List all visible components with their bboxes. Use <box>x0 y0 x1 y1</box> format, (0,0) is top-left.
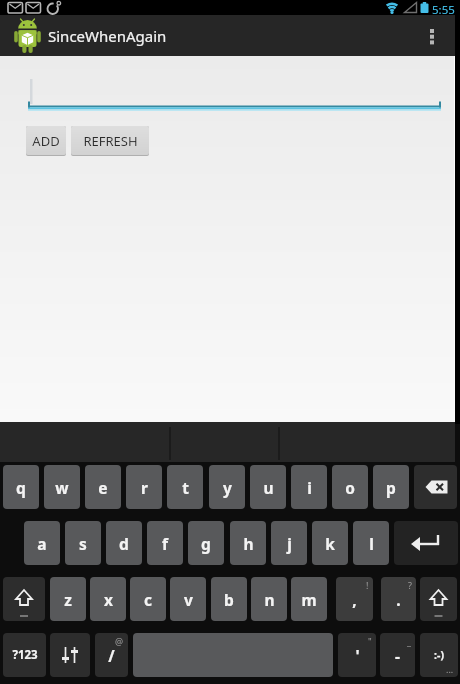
button[interactable]: c <box>130 577 166 621</box>
button[interactable]: b <box>211 577 247 621</box>
staticText: _ <box>407 635 411 647</box>
staticText: ?123 <box>12 647 38 663</box>
button[interactable]: v <box>170 577 206 621</box>
staticText: - <box>395 645 400 666</box>
staticText: e <box>98 477 108 498</box>
staticText: ' <box>355 645 360 666</box>
button[interactable]: o <box>332 465 368 509</box>
button[interactable] <box>418 15 446 56</box>
button[interactable] <box>414 465 457 509</box>
button[interactable]: g <box>188 521 224 565</box>
staticText: x <box>104 589 113 610</box>
staticText: o <box>345 477 355 498</box>
staticText: ! <box>366 579 369 591</box>
staticText: r <box>141 477 148 498</box>
staticText: g <box>201 533 211 554</box>
button[interactable]: x <box>90 577 126 621</box>
staticText: i <box>307 477 312 498</box>
staticText: f <box>162 533 168 554</box>
staticText: m <box>301 589 317 610</box>
staticText: @ <box>115 635 124 647</box>
button[interactable]: f <box>147 521 183 565</box>
staticText: t <box>182 477 189 498</box>
staticText: h <box>243 533 254 554</box>
staticText: 5:55 <box>432 2 455 17</box>
staticText: c <box>144 589 152 610</box>
staticText: l <box>369 533 374 554</box>
staticText: b <box>224 589 234 610</box>
staticText: ADD <box>32 132 60 150</box>
staticText: n <box>264 589 275 610</box>
button[interactable]: - <box>380 633 415 677</box>
button[interactable]: ' <box>338 633 376 677</box>
button[interactable]: k <box>312 521 348 565</box>
button[interactable]: m <box>291 577 327 621</box>
staticText: / <box>108 645 115 666</box>
button[interactable]: i <box>291 465 327 509</box>
staticText: u <box>263 477 274 498</box>
staticText: . <box>396 589 401 610</box>
button[interactable] <box>50 633 90 677</box>
button[interactable]: u <box>250 465 286 509</box>
button[interactable] <box>28 76 441 110</box>
staticText: a <box>37 533 47 554</box>
button[interactable]: z <box>50 577 86 621</box>
staticText: z <box>64 589 72 610</box>
staticText: v <box>184 589 193 610</box>
button[interactable]: h <box>230 521 266 565</box>
staticText: p <box>386 477 396 498</box>
staticText: ... <box>446 663 454 675</box>
button[interactable]: l <box>353 521 389 565</box>
button[interactable]: n <box>251 577 287 621</box>
button[interactable]: / <box>95 633 128 677</box>
staticText: y <box>223 477 232 498</box>
button[interactable] <box>394 521 458 565</box>
button[interactable]: a <box>24 521 60 565</box>
staticText: w <box>55 477 69 498</box>
staticText: j <box>287 533 292 554</box>
button[interactable]: . <box>381 577 416 621</box>
button[interactable]: q <box>3 465 39 509</box>
button[interactable]: ADD <box>26 126 66 155</box>
button[interactable]: j <box>271 521 307 565</box>
button[interactable]: s <box>65 521 101 565</box>
staticText: :-) <box>434 648 444 662</box>
staticText: q <box>16 477 26 498</box>
staticText: " <box>368 635 372 647</box>
button[interactable]: REFRESH <box>71 126 149 155</box>
button[interactable]: :-) <box>420 633 458 677</box>
button[interactable]: e <box>85 465 121 509</box>
button[interactable]: t <box>167 465 203 509</box>
button[interactable]: p <box>373 465 409 509</box>
staticText: REFRESH <box>83 132 138 150</box>
button[interactable]: y <box>209 465 245 509</box>
staticText: k <box>325 533 335 554</box>
staticText: ? <box>408 579 412 591</box>
button[interactable]: w <box>44 465 80 509</box>
staticText: , <box>352 589 357 610</box>
button[interactable]: r <box>126 465 162 509</box>
staticText: s <box>79 533 87 554</box>
button[interactable] <box>3 577 45 621</box>
staticText: SinceWhenAgain <box>48 26 167 46</box>
button[interactable]: , <box>336 577 373 621</box>
staticText: d <box>119 533 129 554</box>
button[interactable]: ?123 <box>3 633 46 677</box>
button[interactable]: d <box>106 521 142 565</box>
button[interactable] <box>420 577 457 621</box>
